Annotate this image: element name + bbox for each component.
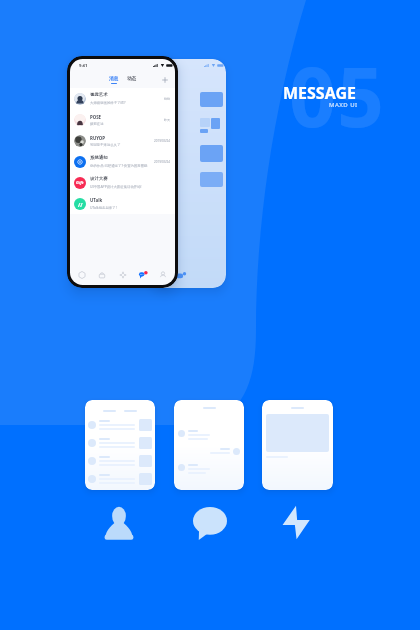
staticText: // — [78, 201, 83, 208]
staticText: MAXD UI — [329, 101, 358, 109]
button[interactable]: RUYOP — [70, 130, 175, 151]
button[interactable]: Shop — [94, 267, 110, 283]
staticText: 2019/03/24 — [154, 139, 170, 143]
staticText: 消息 — [109, 76, 119, 82]
staticText: RUYOP — [90, 135, 106, 141]
staticText: UTalk — [90, 197, 103, 203]
button[interactable]: // — [70, 193, 175, 214]
staticText: POSE — [90, 114, 102, 120]
button[interactable]: Messages — [193, 507, 227, 540]
staticText: 9:41 — [79, 63, 88, 69]
button[interactable] — [85, 400, 155, 490]
staticText: 系统通知 — [90, 155, 108, 161]
button[interactable]: Profile — [104, 506, 134, 542]
staticText: UI中国APP设计大赛征集活动开始! — [90, 184, 142, 189]
button[interactable]: 系统通知 — [70, 151, 175, 172]
staticText: 等回复不来这么久了 — [90, 143, 121, 147]
staticText: UTalk稿走起来了! — [90, 205, 117, 210]
staticText: 摄影在这 — [90, 122, 104, 126]
staticText: Gift — [76, 180, 84, 186]
staticText: 视觉艺术 — [90, 92, 108, 98]
button[interactable]: 视觉艺术 — [70, 88, 175, 109]
button[interactable]: Profile — [155, 267, 171, 283]
staticText: 您的作品 已经通过了? 快置为推荐图哦 — [90, 163, 148, 168]
staticText: 刚刚 — [164, 97, 170, 101]
button[interactable]: Add — [161, 76, 169, 84]
button[interactable]: Discover — [115, 267, 131, 283]
staticText: 05 — [289, 39, 385, 151]
staticText: 动态 — [127, 76, 137, 82]
button[interactable]: Gift — [70, 172, 175, 193]
staticText: 设计大赛 — [90, 176, 108, 182]
button[interactable] — [262, 400, 333, 490]
staticText: MESSAGE — [283, 82, 356, 104]
button[interactable] — [174, 400, 244, 490]
staticText: 大师级版画的样子了吧? — [90, 100, 126, 105]
button[interactable]: 消息 — [109, 76, 119, 84]
button[interactable]: POSE — [70, 109, 175, 130]
staticText: 2019/03/24 — [154, 160, 170, 164]
button[interactable]: Home — [74, 267, 90, 283]
button[interactable]: 动态 — [127, 76, 137, 84]
button[interactable]: Flash — [282, 505, 310, 540]
staticText: 昨天 — [164, 118, 170, 122]
button[interactable]: Messages — [135, 267, 151, 283]
